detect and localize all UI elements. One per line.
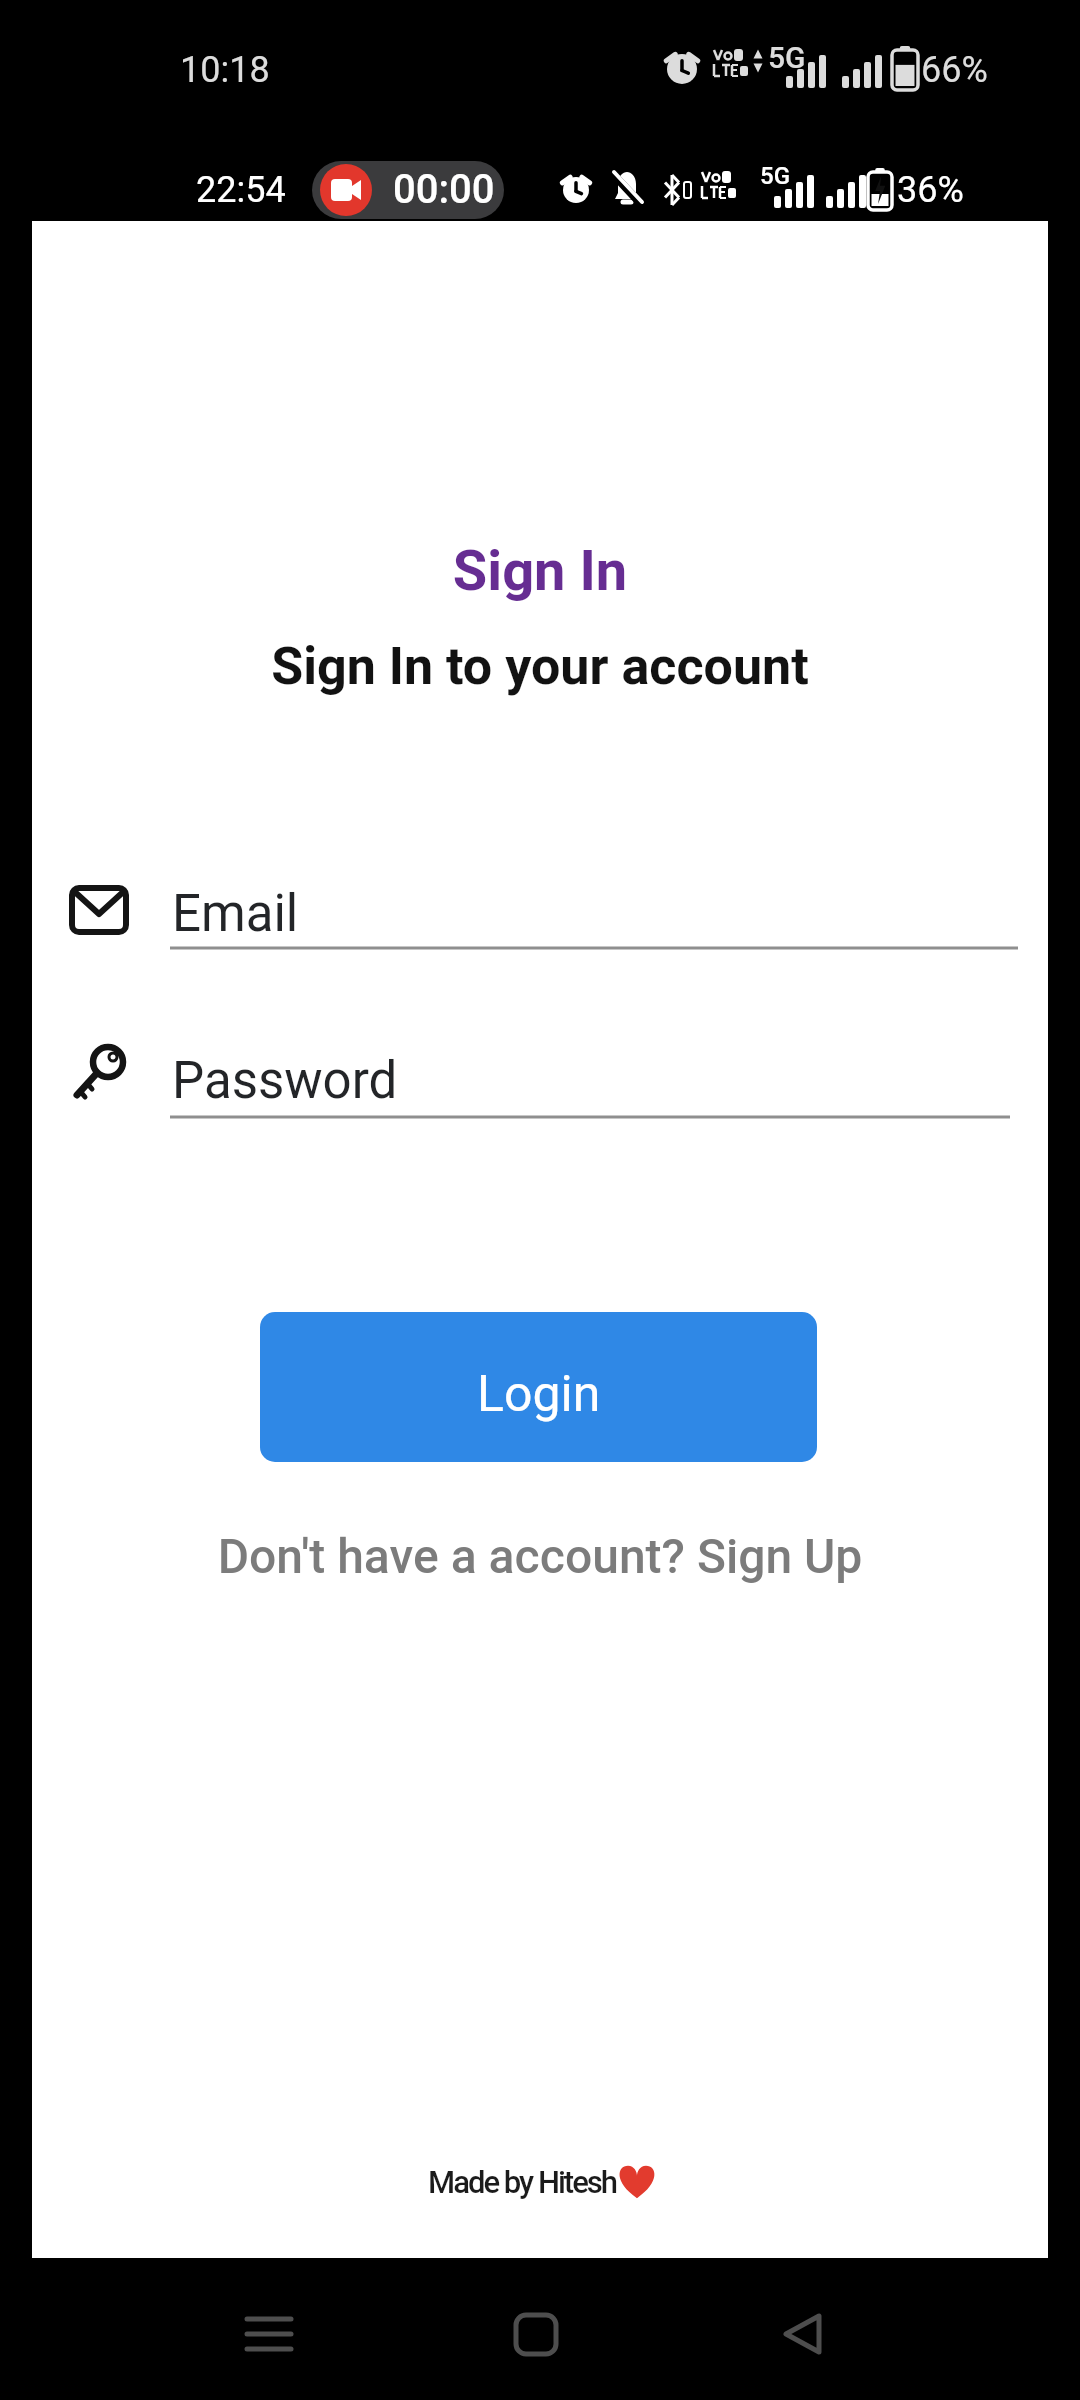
button[interactable]: Email <box>170 866 1018 952</box>
staticText: 5G <box>760 162 790 190</box>
staticText: Email <box>172 884 299 944</box>
button[interactable]: Login <box>260 1312 817 1462</box>
staticText: 22:54 <box>196 169 286 211</box>
staticText: 36% <box>897 169 964 211</box>
staticText: Password <box>172 1051 398 1111</box>
staticText: Sign In to your account <box>0 636 1080 697</box>
staticText: 00:00 <box>393 166 495 213</box>
staticText: 66% <box>921 49 988 91</box>
staticText: 10:18 <box>180 49 270 91</box>
staticText: Sign In <box>0 538 1080 604</box>
button[interactable]: Don't have a account? Sign Up <box>0 1528 1080 1584</box>
staticText: Login <box>477 1365 601 1424</box>
staticText: 5G <box>768 40 806 75</box>
staticText: Made by Hitesh <box>428 2164 617 2200</box>
button[interactable]: Password <box>170 1033 1010 1121</box>
